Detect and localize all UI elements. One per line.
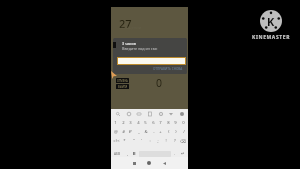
staticText: ↵ [181,151,185,156]
button[interactable]: @ [112,128,119,136]
staticText: ) [175,129,177,135]
button[interactable]: 2 [120,119,127,127]
staticText: ВЫЙТИ [118,85,128,89]
staticText: 0 [156,76,163,90]
button[interactable]: # [120,128,127,136]
staticText: " [133,138,135,144]
button[interactable]: Voice input [131,149,137,158]
button[interactable]: ⌫ [179,137,186,145]
staticText: 8 [167,120,170,126]
button[interactable]: Clipboard [146,110,153,117]
button[interactable]: 3 [127,119,134,127]
button[interactable]: ₽ [127,128,134,136]
staticText: ОТМЕНА [117,79,128,83]
button[interactable]: Enter [178,149,187,158]
staticText: / [183,129,185,135]
staticText: @ [114,129,118,135]
button[interactable]: ! [162,137,169,145]
button[interactable]: Sticker [125,110,132,117]
staticText: =\< [113,138,120,144]
button[interactable]: 5 [142,119,149,127]
button[interactable]: . [172,149,177,158]
staticText: # [122,129,125,135]
button[interactable]: KineMaster watermark [250,10,292,41]
button[interactable]: GIF [135,110,142,117]
staticText: 3 [129,120,132,126]
staticText: ? [174,138,176,144]
staticText: 2 [122,120,125,126]
staticText: 0 [182,120,185,126]
staticText: ⌫ [180,139,186,144]
button[interactable]: ОТПРАВИТЬ СНОВА [151,65,184,72]
staticText: ! [165,138,167,144]
staticText: 1 [114,120,117,126]
staticText: + [159,129,162,135]
staticText: * [123,138,126,144]
staticText: : [149,138,151,144]
staticText: АБВ [114,152,121,156]
button[interactable]: ( [165,128,172,136]
button[interactable]: ОТМЕНА [116,78,129,83]
button[interactable]: ? [171,137,178,145]
staticText: & [144,129,148,135]
button[interactable]: Recents [131,160,137,166]
button[interactable]: 9 [172,119,179,127]
button[interactable]: Settings [157,110,164,117]
staticText: . [174,151,176,157]
staticText: ' [141,138,142,144]
button[interactable]: & [142,128,149,136]
button[interactable]: 1 [112,119,119,127]
staticText: - [153,129,155,135]
button[interactable]: ) [172,128,179,136]
button[interactable]: : [146,137,153,145]
staticText: 6 [152,120,155,126]
button[interactable]: ; [154,137,161,145]
button[interactable]: ' [138,137,145,145]
staticText: 5 [144,120,147,126]
button[interactable]: _ [135,128,142,136]
button[interactable]: 6 [150,119,157,127]
staticText: 4 [137,120,140,126]
button[interactable]: Translate [167,110,174,117]
staticText: 3 часов [122,41,136,46]
button[interactable]: * [121,137,128,145]
button[interactable]: , [125,149,131,158]
button[interactable]: - [150,128,157,136]
staticText: 7 [159,120,162,126]
staticText: Введите код из смс [122,46,158,51]
button[interactable]: Home [146,160,152,166]
button[interactable]: 8 [165,119,172,127]
button[interactable]: / [180,128,187,136]
staticText: 9 [174,120,177,126]
staticText: KINEMASTER [252,34,291,41]
button[interactable]: More [178,110,185,117]
button[interactable]: 4 [135,119,142,127]
button[interactable]: + [157,128,164,136]
staticText: K [267,14,275,29]
button[interactable]: Back [161,160,167,166]
button[interactable]: Search [114,110,121,117]
staticText: ₽ [129,129,132,135]
button[interactable]: 0 [180,119,187,127]
staticText: _ [138,129,140,135]
staticText: сообщений [119,25,142,30]
button[interactable]: АБВ [112,149,122,158]
staticText: ОТПРАВИТЬ СНОВА [153,67,183,71]
staticText: , [127,151,129,157]
button[interactable]: ВЫЙТИ [116,84,129,89]
staticText: 27 [119,16,132,31]
button[interactable]: =\< [113,137,120,145]
staticText: ( [168,129,170,135]
button[interactable]: 7 [157,119,164,127]
staticText: ; [157,138,159,144]
button[interactable]: " [130,137,137,145]
